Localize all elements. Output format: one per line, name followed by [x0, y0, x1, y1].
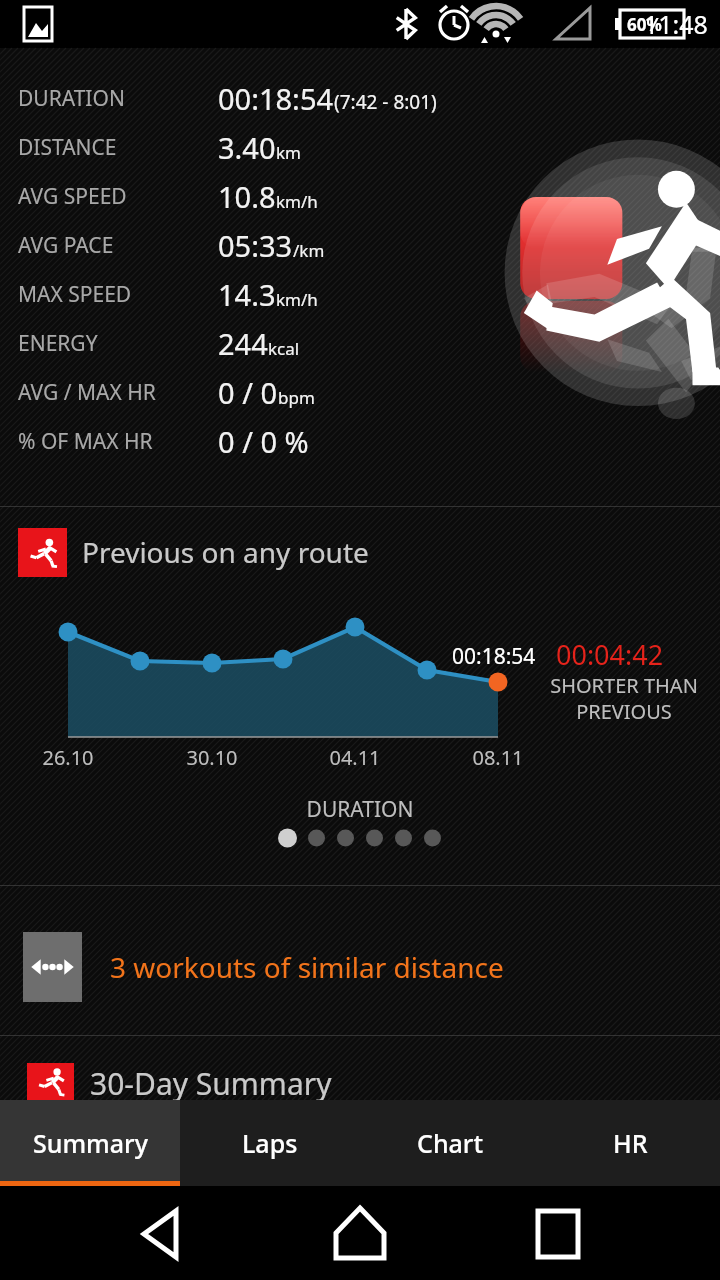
staticText: % OF MAX HR [18, 427, 153, 456]
staticText: bpm [278, 386, 315, 409]
button[interactable]: Home [312, 1186, 408, 1280]
staticText: 05:33 [218, 226, 293, 265]
staticText: 04.11 [310, 744, 400, 771]
staticText: MAX SPEED [18, 280, 132, 309]
staticText: DISTANCE [18, 133, 117, 162]
staticText: 26.10 [23, 744, 113, 771]
button[interactable]: Previous on any route [0, 524, 720, 580]
staticText: km/h [276, 288, 318, 311]
staticText: 14.3 [218, 275, 276, 314]
staticText: AVG SPEED [18, 182, 127, 211]
button[interactable]: Recent apps [510, 1186, 606, 1280]
staticText: (7:42 - 8:01) [334, 89, 437, 115]
staticText: DURATION [18, 84, 125, 113]
staticText: Chart [417, 1126, 484, 1160]
staticText: 30.10 [167, 744, 257, 771]
staticText: Previous on any route [82, 533, 369, 571]
staticText: ENERGY [18, 329, 98, 358]
button[interactable]: Back [114, 1186, 210, 1280]
staticText: 30-Day Summary [90, 1063, 332, 1100]
staticText: HR [613, 1126, 648, 1160]
staticText: 00:04:42 [556, 636, 664, 673]
staticText: 0 / 0 % [218, 422, 309, 461]
staticText: 3.40 [218, 128, 276, 167]
button[interactable]: Laps [180, 1100, 360, 1186]
button[interactable]: Summary [0, 1100, 180, 1186]
staticText: AVG PACE [18, 231, 114, 260]
staticText: /km [293, 239, 325, 262]
staticText: km [276, 141, 301, 164]
staticText: AVG / MAX HR [18, 378, 156, 407]
button[interactable]: HR [540, 1100, 720, 1186]
button[interactable]: Chart [360, 1100, 540, 1186]
staticText: 10.8 [218, 177, 276, 216]
staticText: Laps [242, 1126, 298, 1160]
staticText: 11:48 [644, 7, 708, 41]
staticText: 244 [218, 324, 268, 363]
staticText: Summary [33, 1126, 148, 1160]
staticText: 00:18:54 [218, 79, 334, 118]
button[interactable]: 30-Day Summary [0, 1063, 720, 1100]
staticText: kcal [268, 337, 300, 360]
staticText: 0 / 0 [218, 373, 278, 412]
staticText: 3 workouts of similar distance [110, 948, 504, 986]
staticText: 00:18:54 [452, 642, 536, 671]
staticText: 08.11 [453, 744, 543, 771]
staticText: km/h [276, 190, 318, 213]
staticText: SHORTER THAN PREVIOUS [528, 672, 720, 725]
staticText: 60% [627, 13, 662, 36]
staticText: DURATION [0, 795, 720, 824]
button[interactable]: 3 workouts of similar distance [0, 912, 720, 1022]
